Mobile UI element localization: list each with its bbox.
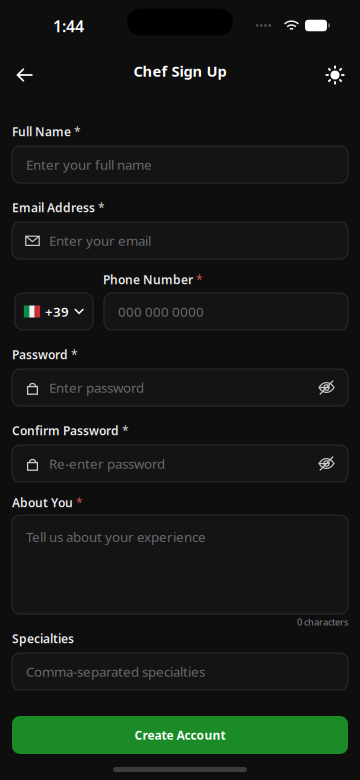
staticText: Full Name: [12, 123, 71, 139]
staticText: About You: [12, 494, 73, 510]
button[interactable]: 000 000 0000: [104, 293, 348, 330]
staticText: Tell us about your experience: [26, 528, 206, 546]
staticText: *: [98, 199, 105, 215]
staticText: +39: [45, 303, 69, 320]
button[interactable]: Create Account: [12, 716, 348, 754]
button[interactable]: Toggle appearance: [315, 55, 355, 95]
button[interactable]: Enter your full name: [12, 146, 348, 183]
staticText: *: [76, 494, 83, 510]
staticText: Enter your full name: [26, 156, 152, 173]
staticText: Enter password: [49, 379, 144, 396]
staticText: Phone Number: [103, 271, 193, 287]
staticText: Create Account: [134, 727, 225, 743]
staticText: 000 000 0000: [118, 303, 204, 320]
staticText: Chef Sign Up: [133, 61, 226, 81]
staticText: Confirm Password: [12, 422, 119, 438]
staticText: Enter your email: [49, 232, 151, 249]
staticText: Comma-separated specialties: [26, 663, 205, 680]
staticText: Password: [12, 346, 68, 362]
staticText: *: [71, 346, 78, 362]
button[interactable]: Enter your email: [12, 222, 348, 259]
staticText: 1:44: [53, 15, 84, 37]
button[interactable]: Comma-separated specialties: [12, 653, 348, 690]
button[interactable]: Tell us about your experience: [12, 515, 348, 614]
staticText: Re-enter password: [49, 455, 165, 472]
staticText: Email Address: [12, 199, 95, 215]
staticText: *: [196, 271, 203, 287]
button[interactable]: Back: [5, 55, 45, 95]
staticText: *: [74, 123, 81, 139]
button[interactable]: +39: [12, 293, 96, 330]
button[interactable]: Enter password: [12, 369, 348, 406]
staticText: 0 characters: [297, 616, 348, 628]
staticText: Specialties: [12, 630, 74, 646]
button[interactable]: Re-enter password: [12, 445, 348, 482]
staticText: *: [122, 422, 129, 438]
